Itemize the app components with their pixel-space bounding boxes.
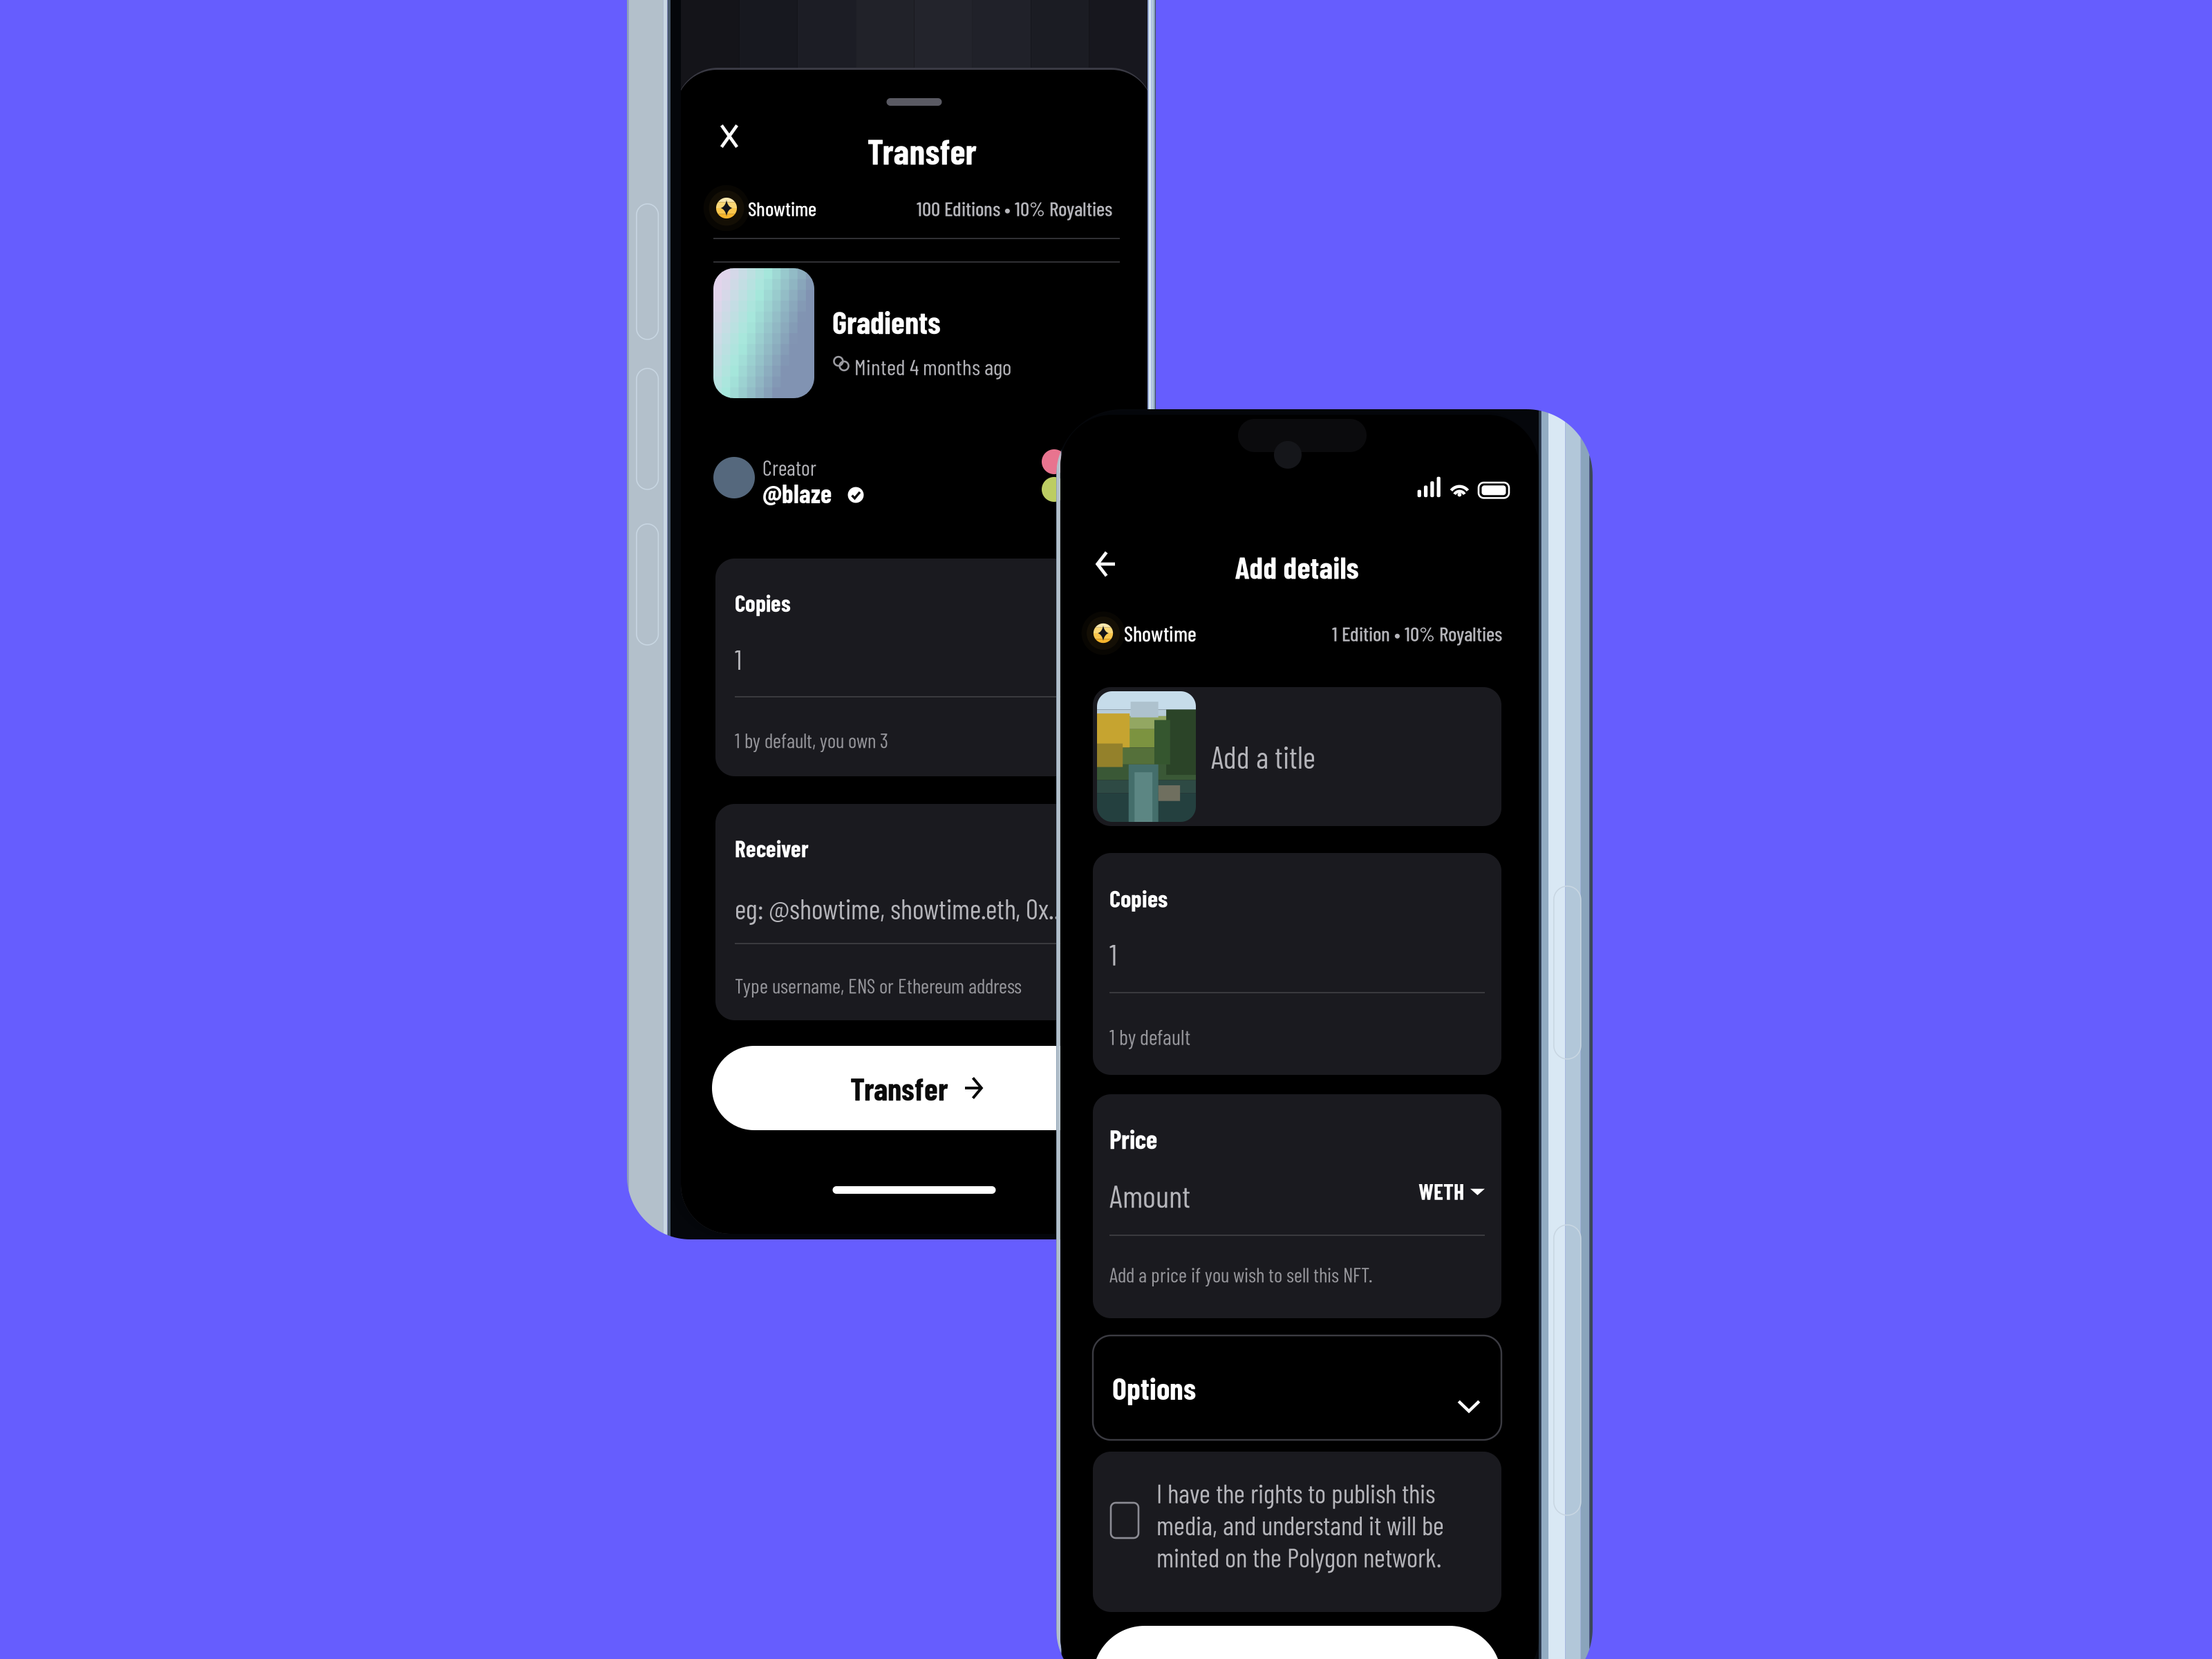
staticText: 1	[735, 642, 742, 675]
button[interactable]: Add a title	[1093, 687, 1501, 826]
staticText: eg: @showtime, showtime.eth, 0x..	[735, 892, 1060, 925]
staticText: Showtime	[1124, 620, 1197, 646]
staticText: 1 by default, you own 3	[735, 728, 888, 752]
staticText: @blaze	[762, 477, 832, 508]
button[interactable]: Copies	[1093, 853, 1501, 1075]
button[interactable]: Back	[1086, 545, 1125, 583]
button[interactable]: Copies	[715, 559, 1121, 776]
staticText: Add details	[1235, 549, 1359, 585]
staticText: Options	[1112, 1369, 1196, 1406]
button[interactable]: I have the rights to publish this media,…	[1093, 1452, 1501, 1612]
staticText: Price	[1109, 1123, 1157, 1154]
staticText: Minted 4 months ago	[854, 353, 1011, 380]
staticText: Copies	[735, 589, 791, 617]
staticText: 100 Editions • 10% Royalties	[917, 196, 1112, 220]
staticText: Amount	[1109, 1177, 1190, 1214]
staticText: WETH	[1419, 1178, 1464, 1204]
button[interactable]: Receiver	[715, 804, 1121, 1020]
staticText: Receiver	[735, 834, 809, 862]
staticText: Add a price if you wish to sell this NFT…	[1109, 1262, 1373, 1287]
button[interactable]: Transfer	[712, 1046, 1121, 1130]
staticText: Transfer	[850, 1069, 948, 1107]
button[interactable]: Mint	[1093, 1626, 1501, 1659]
staticText: 1	[1109, 936, 1117, 971]
staticText: Type username, ENS or Ethereum address	[735, 973, 1022, 998]
staticText: Creator	[762, 455, 816, 480]
staticText: Gradients	[832, 303, 941, 340]
button[interactable]: Options	[1093, 1335, 1501, 1440]
staticText: Copies	[1109, 883, 1168, 912]
staticText: Transfer	[867, 130, 976, 172]
staticText: Add a title	[1211, 738, 1315, 775]
staticText: 1 Edition • 10% Royalties	[1332, 621, 1502, 645]
staticText: I have the rights to publish this media,…	[1156, 1477, 1444, 1573]
staticText: 1 by default	[1109, 1024, 1190, 1049]
button[interactable]: Price	[1093, 1094, 1501, 1318]
staticText: Showtime	[748, 196, 816, 220]
button[interactable]: Close	[711, 118, 748, 155]
